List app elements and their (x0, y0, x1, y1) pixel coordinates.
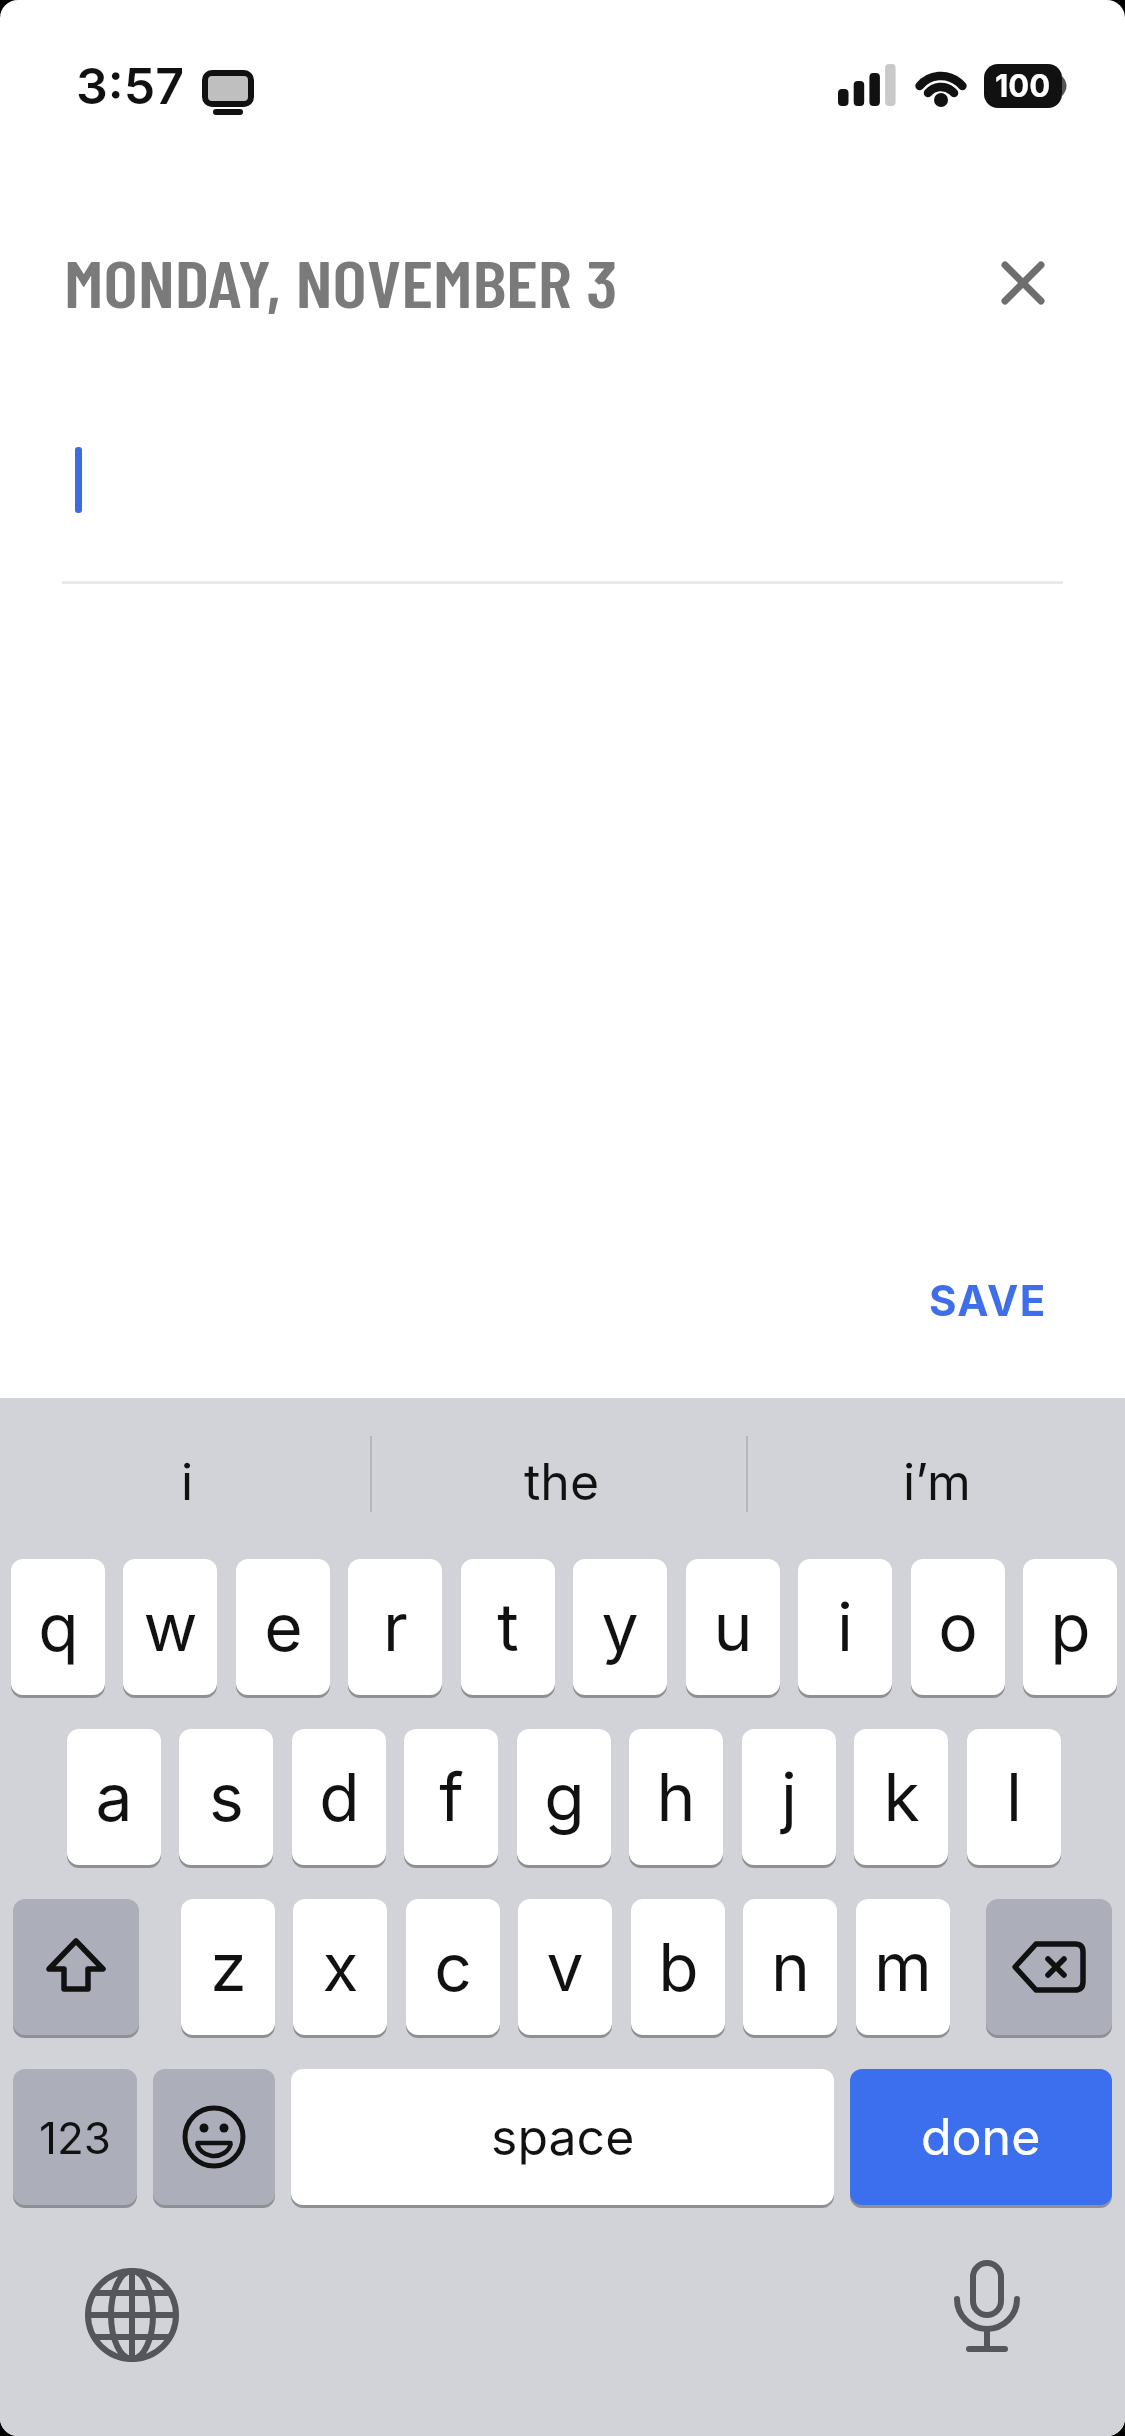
staticText: u (713, 1587, 753, 1667)
staticText: n (771, 1927, 810, 2007)
button[interactable] (66, 2249, 198, 2381)
button[interactable]: x (293, 1899, 387, 2035)
staticText: p (1050, 1587, 1091, 1667)
button[interactable]: h (629, 1729, 723, 1865)
staticText: m (874, 1927, 932, 2007)
staticText: MONDAY, NOVEMBER 3 (64, 242, 618, 321)
button[interactable]: p (1023, 1559, 1117, 1695)
staticText: r (383, 1587, 408, 1667)
button[interactable] (985, 245, 1061, 321)
button[interactable]: z (181, 1899, 275, 2035)
button[interactable]: o (911, 1559, 1005, 1695)
staticText: l (1006, 1757, 1022, 1837)
button[interactable]: 123 (13, 2069, 137, 2205)
staticText: 100 (995, 67, 1051, 105)
staticText: q (38, 1587, 79, 1667)
staticText: done (921, 2107, 1041, 2167)
staticText: t (497, 1587, 519, 1667)
staticText: SAVE (929, 1275, 1047, 1326)
staticText: s (209, 1757, 244, 1837)
staticText: the (524, 1452, 600, 1512)
staticText: w (143, 1587, 198, 1667)
button[interactable]: i’m (787, 1442, 1087, 1522)
button[interactable]: d (292, 1729, 386, 1865)
staticText: h (656, 1757, 696, 1837)
button[interactable]: e (236, 1559, 330, 1695)
staticText: d (319, 1757, 360, 1837)
button[interactable]: i (75, 1442, 300, 1522)
button[interactable]: the (412, 1442, 712, 1522)
staticText: f (439, 1757, 464, 1837)
staticText: c (434, 1927, 472, 2007)
button[interactable]: q (11, 1559, 105, 1695)
staticText: i (837, 1587, 853, 1667)
button[interactable]: n (743, 1899, 837, 2035)
button[interactable] (920, 2243, 1054, 2383)
staticText: 3:57 (76, 56, 185, 116)
button[interactable]: s (179, 1729, 273, 1865)
staticText: v (546, 1927, 584, 2007)
button[interactable]: f (404, 1729, 498, 1865)
button[interactable]: b (631, 1899, 725, 2035)
staticText: 123 (39, 2111, 111, 2164)
staticText: space (491, 2107, 635, 2167)
button[interactable]: g (517, 1729, 611, 1865)
button[interactable]: m (856, 1899, 950, 2035)
staticText: k (883, 1757, 920, 1837)
button[interactable]: space (291, 2069, 834, 2205)
button[interactable]: v (518, 1899, 612, 2035)
button[interactable]: done (850, 2069, 1112, 2205)
button[interactable]: i (798, 1559, 892, 1695)
button[interactable] (153, 2069, 275, 2205)
button[interactable]: c (406, 1899, 500, 2035)
button[interactable] (986, 1899, 1112, 2035)
staticText: a (95, 1757, 133, 1837)
staticText: i’m (903, 1452, 971, 1512)
button[interactable]: a (67, 1729, 161, 1865)
button[interactable]: k (854, 1729, 948, 1865)
staticText: z (210, 1927, 247, 2007)
staticText: x (322, 1927, 359, 2007)
staticText: i (181, 1452, 194, 1512)
staticText: o (938, 1587, 978, 1667)
button[interactable]: r (348, 1559, 442, 1695)
button[interactable]: l (967, 1729, 1061, 1865)
staticText: g (544, 1757, 585, 1837)
staticText: j (781, 1757, 797, 1837)
button[interactable]: y (573, 1559, 667, 1695)
button[interactable]: j (742, 1729, 836, 1865)
staticText: e (264, 1587, 303, 1667)
staticText: y (601, 1587, 639, 1667)
button[interactable] (13, 1899, 139, 2035)
button[interactable]: u (686, 1559, 780, 1695)
button[interactable]: t (461, 1559, 555, 1695)
button[interactable]: w (123, 1559, 217, 1695)
staticText: b (658, 1927, 699, 2007)
button[interactable]: SAVE (915, 1268, 1060, 1332)
